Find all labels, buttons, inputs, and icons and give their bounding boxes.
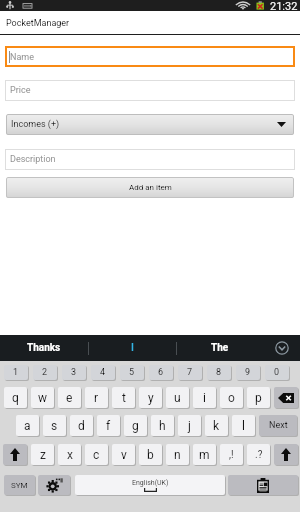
button[interactable]: b xyxy=(139,444,162,465)
staticText: Incomes (+) xyxy=(11,119,60,130)
button[interactable]: z xyxy=(31,444,54,465)
button[interactable]: i xyxy=(193,387,216,408)
staticText: .? xyxy=(255,449,263,461)
staticText: r xyxy=(94,391,99,405)
button[interactable]: Price xyxy=(5,80,295,101)
button[interactable]: e xyxy=(58,387,81,408)
button[interactable]: Settings xyxy=(38,475,70,495)
staticText: 8 xyxy=(216,367,222,378)
staticText: I xyxy=(131,342,134,354)
button[interactable]: p xyxy=(247,387,270,408)
staticText: y xyxy=(148,391,154,405)
button[interactable]: SYM xyxy=(4,475,35,495)
button[interactable]: 9 xyxy=(236,365,260,380)
button[interactable]: t xyxy=(112,387,135,408)
staticText: 21:32 xyxy=(270,0,298,11)
button[interactable]: l xyxy=(232,415,255,436)
staticText: u xyxy=(174,391,181,405)
button[interactable]: Shift xyxy=(3,444,27,465)
staticText: The xyxy=(211,342,229,354)
button[interactable]: c xyxy=(85,444,108,465)
staticText: 6 xyxy=(158,367,164,378)
staticText: z xyxy=(40,448,46,462)
button[interactable]: Incomes (+) xyxy=(6,114,294,135)
button[interactable]: Name xyxy=(5,46,295,67)
button[interactable]: a xyxy=(16,415,39,436)
button[interactable]: 1 xyxy=(4,365,28,380)
staticText: i xyxy=(203,391,206,405)
button[interactable]: Thanks xyxy=(0,335,88,361)
staticText: a xyxy=(24,419,31,433)
staticText: c xyxy=(93,448,100,462)
staticText: 9 xyxy=(245,367,251,378)
button[interactable]: Expand suggestions xyxy=(263,335,300,361)
staticText: ,! xyxy=(229,449,234,461)
staticText: 5 xyxy=(129,367,135,378)
button[interactable]: r xyxy=(85,387,108,408)
staticText: v xyxy=(121,448,127,462)
staticText: English(UK) xyxy=(132,479,169,487)
staticText: 7 xyxy=(187,367,193,378)
button[interactable]: 7 xyxy=(178,365,202,380)
staticText: Price xyxy=(10,85,31,96)
button[interactable]: h xyxy=(151,415,174,436)
staticText: h xyxy=(159,419,166,433)
staticText: Add an item xyxy=(129,183,172,192)
button[interactable]: v xyxy=(112,444,135,465)
staticText: g xyxy=(132,419,139,433)
staticText: f xyxy=(106,419,111,433)
button[interactable]: 0 xyxy=(265,365,289,380)
button[interactable]: Backspace xyxy=(274,387,298,408)
button[interactable]: m xyxy=(193,444,216,465)
staticText: Thanks xyxy=(27,342,61,354)
button[interactable]: Add an item xyxy=(6,177,294,198)
staticText: s xyxy=(51,419,58,433)
button[interactable]: n xyxy=(166,444,189,465)
staticText: l xyxy=(242,419,245,433)
button[interactable]: Next xyxy=(259,415,297,436)
staticText: Description xyxy=(10,154,56,165)
staticText: m xyxy=(199,448,210,462)
button[interactable]: o xyxy=(220,387,243,408)
button[interactable]: 4 xyxy=(91,365,115,380)
staticText: e xyxy=(66,391,73,405)
button[interactable]: 2 xyxy=(33,365,57,380)
button[interactable]: Space xyxy=(75,475,225,495)
staticText: w xyxy=(38,391,48,405)
button[interactable]: Clipboard xyxy=(228,475,298,495)
button[interactable]: q xyxy=(4,387,27,408)
button[interactable]: w xyxy=(31,387,54,408)
staticText: 4 xyxy=(100,367,106,378)
button[interactable]: u xyxy=(166,387,189,408)
button[interactable]: Description xyxy=(5,149,295,170)
button[interactable]: f xyxy=(97,415,120,436)
button[interactable]: .? xyxy=(247,444,270,465)
button[interactable]: 8 xyxy=(207,365,231,380)
staticText: k xyxy=(213,419,220,433)
staticText: PocketManager xyxy=(6,18,70,29)
button[interactable]: Shift xyxy=(274,444,298,465)
staticText: j xyxy=(188,419,191,433)
staticText: t xyxy=(122,391,126,405)
button[interactable]: The xyxy=(177,335,263,361)
staticText: 0 xyxy=(274,367,280,378)
staticText: x xyxy=(67,448,73,462)
button[interactable]: k xyxy=(205,415,228,436)
button[interactable]: s xyxy=(43,415,66,436)
button[interactable]: x xyxy=(58,444,81,465)
button[interactable]: 3 xyxy=(62,365,86,380)
button[interactable]: j xyxy=(178,415,201,436)
staticText: q xyxy=(12,391,19,405)
button[interactable]: 6 xyxy=(149,365,173,380)
button[interactable]: ,! xyxy=(220,444,243,465)
button[interactable]: I xyxy=(89,335,176,361)
button[interactable]: 5 xyxy=(120,365,144,380)
button[interactable]: g xyxy=(124,415,147,436)
button[interactable]: d xyxy=(70,415,93,436)
staticText: o xyxy=(228,391,235,405)
staticText: 2 xyxy=(42,367,48,378)
staticText: b xyxy=(147,448,154,462)
button[interactable]: y xyxy=(139,387,162,408)
staticText: d xyxy=(78,419,85,433)
staticText: SYM xyxy=(11,481,28,490)
